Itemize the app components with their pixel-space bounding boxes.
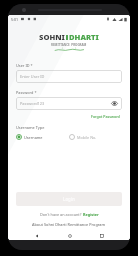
staticText: Forgot Password <box>91 114 120 119</box>
staticText: Username <box>24 135 43 140</box>
staticText: User ID * <box>16 63 33 68</box>
button[interactable]: Username <box>16 133 69 141</box>
button[interactable]: About Sohni Dharti Remittance Program <box>16 222 122 227</box>
staticText: Password123 <box>20 101 45 106</box>
staticText: SOHNI <box>39 32 65 42</box>
staticText: Mobile No. <box>77 135 97 140</box>
button[interactable]: Forgot Password <box>89 113 122 120</box>
staticText: Password * <box>16 90 37 95</box>
button[interactable]: Show password <box>111 100 118 107</box>
staticText: Don't have an account? <box>40 212 83 217</box>
button[interactable]: Home <box>65 231 74 240</box>
staticText: Login <box>63 196 75 202</box>
button[interactable]: Password123 <box>16 97 122 110</box>
staticText: REMITTANCE PROGRAM <box>51 43 87 47</box>
staticText: DHARTI <box>69 32 99 42</box>
button[interactable]: Recent apps <box>97 231 106 240</box>
button[interactable]: Back <box>32 231 41 240</box>
staticText: Username Type <box>16 125 45 130</box>
button[interactable]: Enter User ID <box>16 70 122 83</box>
staticText: Register <box>83 212 99 217</box>
staticText: About Sohni Dharti Remittance Program <box>32 222 106 227</box>
staticText: 5:01 <box>11 17 19 22</box>
button[interactable]: Mobile No. <box>69 133 122 141</box>
staticText: Enter User ID <box>20 74 45 79</box>
button[interactable]: Don't have an account? <box>16 212 122 217</box>
